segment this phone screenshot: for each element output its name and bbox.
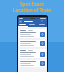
button[interactable]: Open navigation menu [19,20,22,23]
button[interactable] [18,23,27,26]
button[interactable]: Track train [19,49,46,58]
staticText: Spot Exact [0,1,64,7]
button[interactable] [27,23,37,26]
button[interactable]: Track train [40,52,45,57]
button[interactable]: Track train [19,29,46,38]
button[interactable]: Track train [19,60,46,67]
button[interactable]: Track train [19,40,46,47]
staticText: Location of Train [0,7,64,13]
button[interactable]: Track train [40,41,45,46]
button[interactable]: Track train [40,61,45,66]
button[interactable]: Track train [40,32,45,37]
button[interactable]: Search [41,20,43,22]
button[interactable] [37,23,47,26]
